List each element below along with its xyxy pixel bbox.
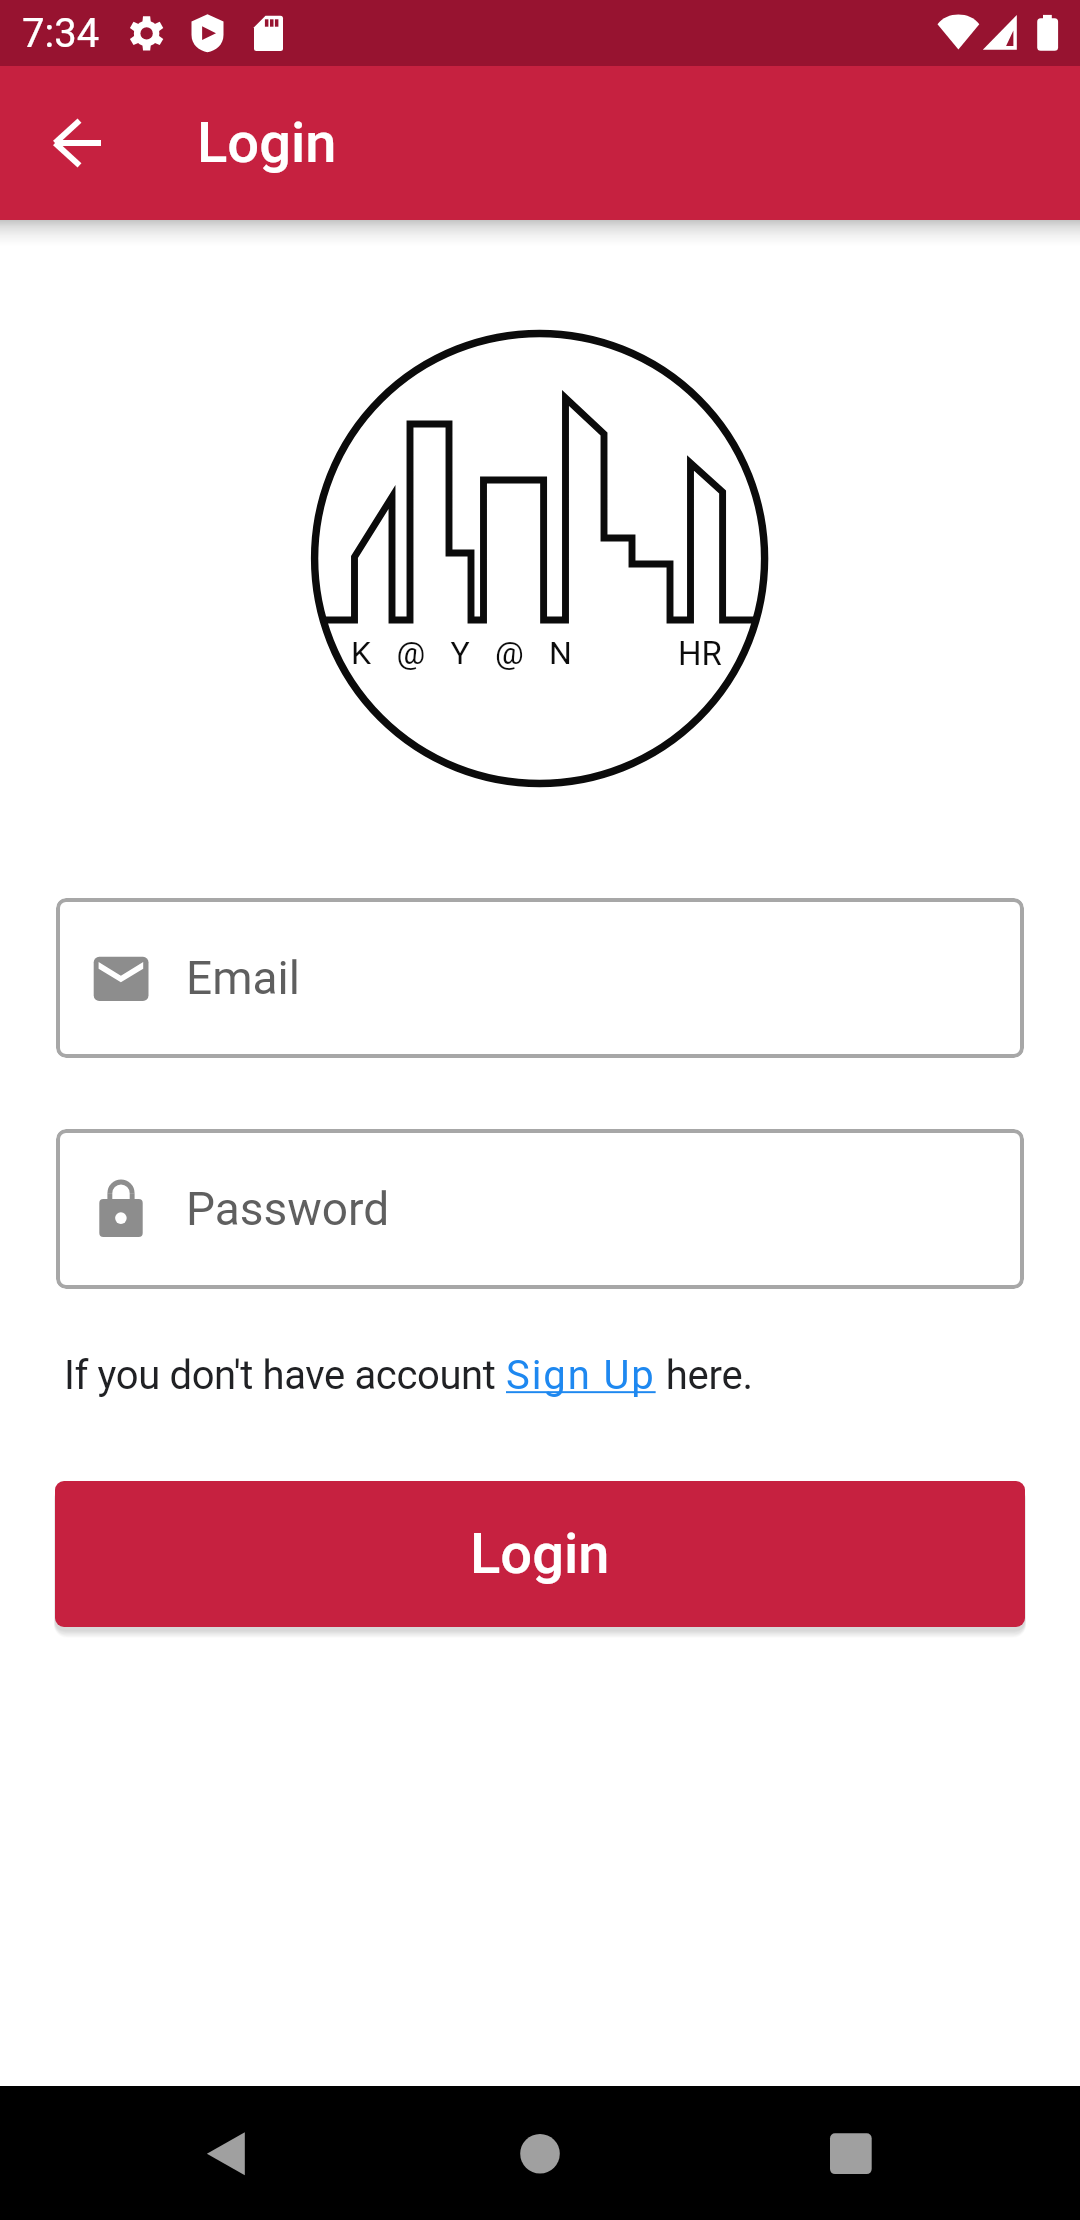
staticText: If you don't have account (64, 1352, 506, 1399)
staticText: Login (197, 110, 337, 176)
staticText: Email (186, 951, 300, 1005)
button[interactable]: Password (56, 1129, 1024, 1289)
button[interactable]: Sign Up (506, 1352, 656, 1399)
button[interactable]: Login (55, 1481, 1025, 1627)
staticText: Password (186, 1182, 390, 1236)
button[interactable]: Back (28, 93, 128, 193)
staticText: 7:34 (22, 10, 100, 57)
staticText: Login (470, 1521, 610, 1587)
staticText: Sign Up (506, 1352, 656, 1399)
staticText: K @ Y @ N (351, 634, 581, 672)
staticText: HR (678, 634, 722, 673)
button[interactable]: Email (56, 898, 1024, 1058)
staticText: here. (656, 1352, 753, 1399)
